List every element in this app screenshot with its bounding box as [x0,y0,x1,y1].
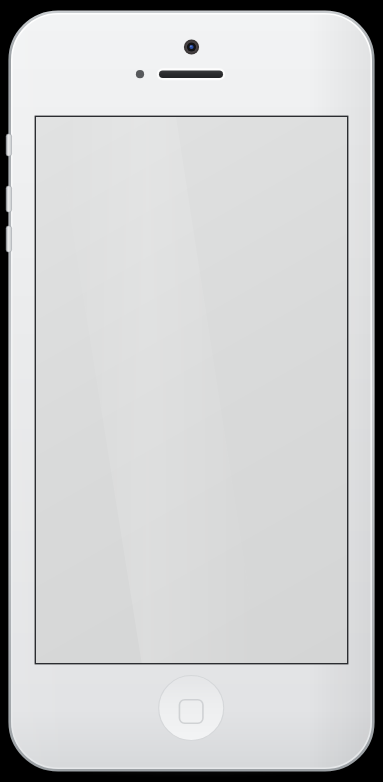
button[interactable]: White smartphone device mockup [0,0,383,782]
